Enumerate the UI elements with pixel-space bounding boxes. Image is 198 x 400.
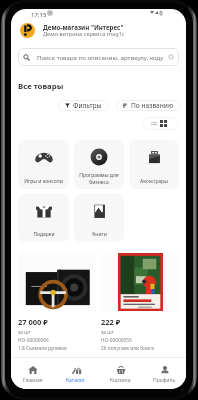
staticText: 27 000 ₽	[18, 317, 48, 327]
staticText: Книги	[92, 231, 107, 238]
staticText: Подарки	[33, 231, 55, 238]
button[interactable]: Программы для бизнеса	[74, 140, 124, 189]
staticText: Корзина	[110, 377, 131, 384]
button[interactable]: Главная	[11, 358, 54, 389]
staticText: Фильтры	[73, 101, 102, 110]
staticText: Поиск товара по описанию, артикулу, коду	[37, 53, 164, 61]
button[interactable]: Профиль	[142, 358, 186, 389]
button[interactable]: Фильтры	[58, 100, 109, 111]
button[interactable]: Игры и консоли	[18, 140, 69, 189]
staticText: Демо-магазин "Интерес"	[43, 23, 124, 31]
button[interactable]: 222 ₽	[101, 252, 179, 357]
button[interactable]: Поиск товара по описанию, артикулу, коду	[18, 48, 179, 66]
button[interactable]: 27 000 ₽	[18, 252, 96, 357]
staticText: Главная	[23, 377, 43, 384]
staticText: 222 ₽	[101, 317, 121, 327]
button[interactable]: По названию	[116, 100, 181, 111]
button[interactable]: Grid view	[157, 117, 170, 130]
button[interactable]: Подарки	[18, 194, 69, 242]
staticText: 26 попугаев или Книга	[101, 345, 154, 352]
staticText: HO-00000066	[18, 337, 49, 344]
staticText: Программы для бизнеса	[79, 172, 119, 185]
staticText: за шт	[18, 329, 31, 336]
staticText: Игры и консоли	[24, 178, 63, 185]
staticText: Профиль	[153, 377, 176, 384]
button[interactable]: Корзина	[98, 358, 142, 389]
button[interactable]: Аксессуары	[129, 140, 179, 189]
staticText: 1.8 Съемное рулевое	[18, 345, 67, 352]
button[interactable]: Каталог	[54, 358, 98, 389]
staticText: По названию	[131, 101, 174, 110]
button[interactable]: Shop logo	[20, 23, 35, 38]
staticText: Аксессуары	[140, 178, 168, 185]
staticText: HO-00000055	[101, 337, 132, 344]
staticText: Демо-витрина сервиса mag1c	[43, 30, 125, 38]
staticText: за шт	[101, 329, 114, 336]
staticText: Каталог	[66, 377, 86, 384]
staticText: Все товары	[18, 81, 64, 92]
staticText: 17:15	[31, 11, 47, 19]
button[interactable]: List view	[147, 117, 160, 130]
button[interactable]: Книги	[74, 194, 124, 242]
